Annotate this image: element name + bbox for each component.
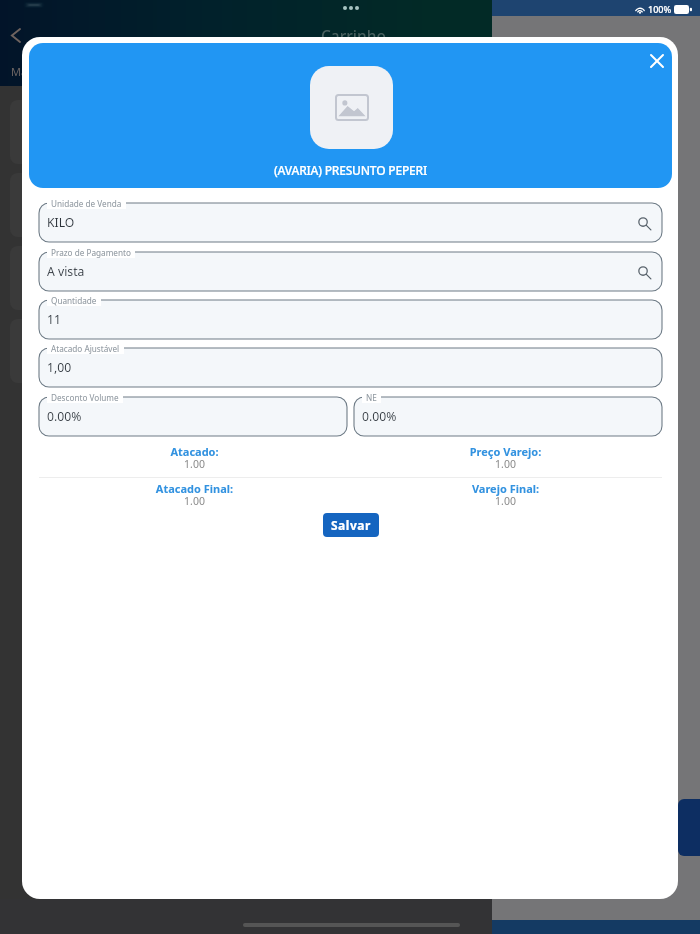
staticText: Prazo de Pagamento [51,247,131,258]
staticText: 11 [47,311,61,328]
staticText: Ma [11,64,28,79]
staticText: Carrinho [321,25,386,46]
staticText: Unidade de Venda [51,198,122,209]
button[interactable]: Salvar [323,513,379,537]
staticText: KILO [47,214,75,231]
button[interactable] [39,397,347,436]
staticText: 100% [648,3,672,15]
staticText: 0.00% [362,408,397,425]
staticText: Desconto Volume [51,392,119,403]
staticText: 1.00 [350,494,661,508]
staticText: (AVARIA) PRESUNTO PEPERI [29,162,672,178]
button[interactable] [39,348,662,387]
button[interactable] [39,300,662,339]
button[interactable] [354,397,662,436]
staticText: NE [366,392,377,403]
staticText: Varejo Final: [350,481,661,496]
staticText: Atacado Ajustável [51,343,120,354]
staticText: 1.00 [39,457,350,471]
button[interactable] [39,252,662,291]
staticText: Atacado: [39,444,350,459]
staticText: 1.00 [39,494,350,508]
staticText: 0.00% [47,408,82,425]
button[interactable]: Fechar [640,44,672,78]
staticText: 1.00 [350,457,661,471]
staticText: Preço Varejo: [350,444,661,459]
staticText: Quantidade [51,295,97,306]
staticText: A vista [47,263,85,280]
staticText: 1,00 [47,359,72,376]
staticText: Atacado Final: [39,481,350,496]
button[interactable] [39,203,662,242]
staticText: Salvar [331,517,371,533]
